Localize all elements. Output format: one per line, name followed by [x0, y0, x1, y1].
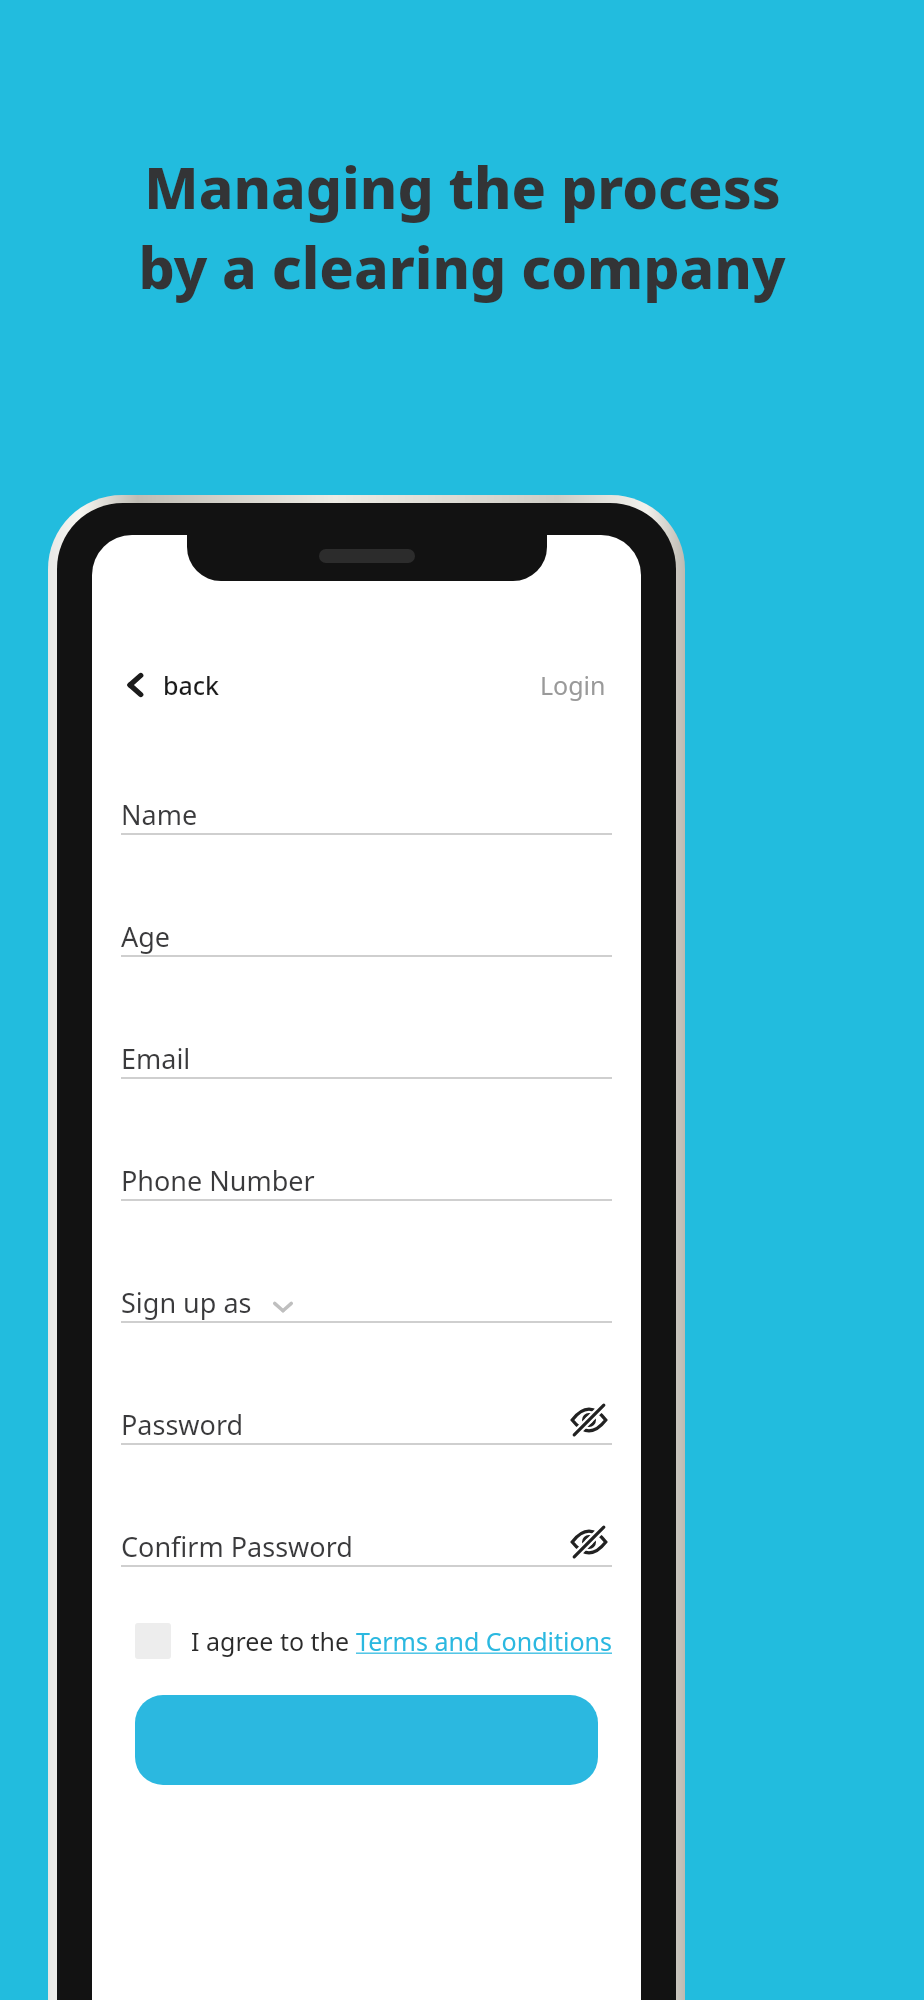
- staticText: Password: [121, 1406, 244, 1443]
- staticText: Terms and Conditions: [356, 1624, 612, 1658]
- staticText: Confirm Password: [121, 1528, 353, 1565]
- staticText: Login: [540, 668, 606, 702]
- button[interactable]: Login: [534, 662, 612, 708]
- staticText: by a clearing company: [138, 228, 786, 306]
- staticText: back: [163, 668, 220, 702]
- button[interactable]: Open dropdown: [268, 1291, 298, 1321]
- staticText: I agree to the: [191, 1624, 356, 1658]
- button[interactable]: Toggle password visibility: [566, 1519, 612, 1565]
- staticText: Email: [121, 1040, 191, 1077]
- staticText: Age: [121, 918, 171, 955]
- button[interactable]: [135, 1695, 598, 1785]
- staticText: Phone Number: [121, 1162, 315, 1199]
- staticText: Managing the process: [144, 148, 781, 226]
- button[interactable]: back: [121, 668, 228, 702]
- staticText: Sign up as: [121, 1284, 252, 1321]
- button[interactable]: Toggle password visibility: [566, 1397, 612, 1443]
- button[interactable]: I agree to the: [121, 1623, 612, 1659]
- staticText: Name: [121, 796, 198, 833]
